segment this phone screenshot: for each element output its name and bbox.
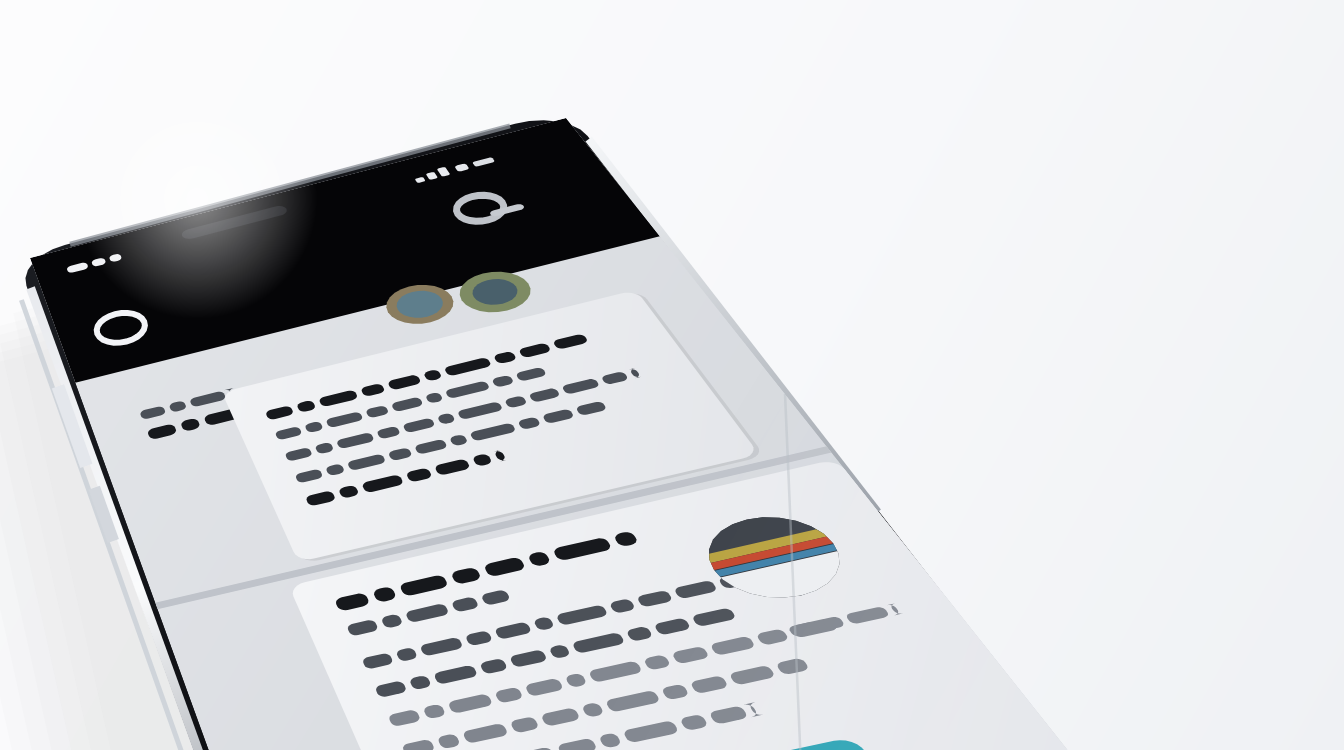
button[interactable]: Phone showing a list of cards — [0, 0, 1344, 750]
